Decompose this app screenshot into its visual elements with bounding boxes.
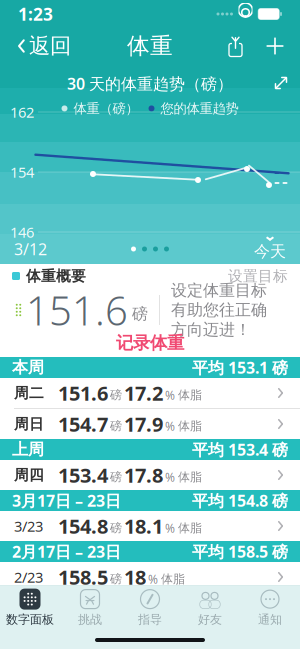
button[interactable]: 全屏 bbox=[266, 68, 296, 98]
staticText: 17.8 bbox=[124, 462, 163, 488]
staticText: 指导 bbox=[138, 612, 162, 627]
button[interactable]: 数字面板 bbox=[0, 585, 60, 629]
button[interactable]: 返回 bbox=[4, 29, 83, 63]
button[interactable]: 周日 bbox=[0, 409, 300, 439]
staticText: 18 bbox=[124, 564, 146, 590]
staticText: 154.8 bbox=[58, 513, 108, 539]
button[interactable]: 记录体重 bbox=[0, 332, 300, 354]
staticText: 周四 bbox=[14, 466, 44, 484]
button[interactable]: 周四 bbox=[0, 460, 300, 490]
staticText: 151.6 bbox=[58, 380, 108, 406]
staticText: 磅 bbox=[110, 521, 122, 535]
button[interactable]: 通知 bbox=[240, 585, 300, 629]
staticText: 体重概要 bbox=[26, 267, 86, 285]
staticText: 2/23 bbox=[14, 567, 43, 587]
staticText: 上周 bbox=[12, 440, 44, 459]
staticText: 153.4 bbox=[58, 462, 108, 488]
staticText: 今天 bbox=[254, 242, 286, 261]
staticText: 平均 153.1 磅 bbox=[192, 357, 288, 378]
staticText: 17.2 bbox=[124, 380, 163, 406]
staticText: % bbox=[165, 387, 175, 403]
staticText: 磅 bbox=[110, 572, 122, 586]
staticText: 周二 bbox=[14, 384, 44, 402]
staticText: 周日 bbox=[14, 415, 44, 433]
staticText: 体脂 bbox=[178, 419, 202, 433]
staticText: 设置目标 bbox=[228, 267, 288, 285]
staticText: 154 bbox=[10, 162, 34, 182]
staticText: 平均 154.8 磅 bbox=[192, 490, 288, 511]
staticText: 2月17日 – 23日 bbox=[12, 541, 121, 562]
staticText: 3/23 bbox=[14, 516, 43, 536]
button[interactable]: 3/23 bbox=[0, 511, 300, 541]
staticText: 151.6 bbox=[26, 283, 128, 336]
staticText: 数字面板 bbox=[6, 612, 54, 627]
staticText: 体脂 bbox=[178, 470, 202, 484]
button[interactable]: 分享 bbox=[217, 29, 254, 63]
staticText: 18.1 bbox=[124, 513, 163, 539]
staticText: 好友 bbox=[198, 612, 222, 627]
staticText: % bbox=[165, 418, 175, 434]
staticText: 体重 bbox=[127, 32, 173, 60]
staticText: % bbox=[148, 571, 158, 587]
staticText: % bbox=[165, 520, 175, 536]
staticText: 平均 158.5 磅 bbox=[192, 541, 288, 562]
staticText: 17.9 bbox=[124, 411, 163, 437]
staticText: 体脂 bbox=[178, 521, 202, 535]
staticText: 设定体重目标有助您往正确 方向迈进！ bbox=[171, 280, 267, 339]
staticText: 挑战 bbox=[78, 612, 102, 627]
button[interactable]: 好友 bbox=[180, 585, 240, 629]
staticText: 体重（磅） bbox=[73, 100, 138, 117]
staticText: 体脂 bbox=[178, 388, 202, 402]
staticText: 30 天的体重趋势（磅） bbox=[67, 73, 233, 94]
staticText: 3/12 bbox=[14, 238, 47, 260]
staticText: 磅 bbox=[110, 388, 122, 402]
staticText: 通知 bbox=[258, 612, 282, 627]
button[interactable]: 设置目标 bbox=[220, 263, 288, 289]
staticText: 您的体重趋势 bbox=[160, 100, 238, 117]
staticText: 返回 bbox=[29, 33, 71, 59]
staticText: 磅 bbox=[110, 470, 122, 484]
staticText: 162 bbox=[10, 102, 34, 122]
staticText: 146 bbox=[10, 222, 34, 242]
staticText: % bbox=[165, 469, 175, 485]
staticText: 磅 bbox=[132, 304, 148, 324]
button[interactable]: 2/23 bbox=[0, 562, 300, 592]
staticText: 154.7 bbox=[58, 411, 108, 437]
button[interactable]: 指导 bbox=[120, 585, 180, 629]
button[interactable]: 周二 bbox=[0, 378, 300, 409]
staticText: 记录体重 bbox=[116, 332, 184, 354]
staticText: 3月17日 – 23日 bbox=[12, 490, 121, 511]
staticText: 本周 bbox=[12, 358, 44, 377]
staticText: 磅 bbox=[110, 419, 122, 433]
button[interactable]: 添加 bbox=[254, 29, 296, 63]
staticText: 158.5 bbox=[58, 564, 108, 590]
staticText: 体脂 bbox=[161, 572, 185, 586]
staticText: 1:23 bbox=[18, 2, 53, 25]
button[interactable]: 挑战 bbox=[60, 585, 120, 629]
staticText: 平均 153.4 磅 bbox=[192, 439, 288, 460]
